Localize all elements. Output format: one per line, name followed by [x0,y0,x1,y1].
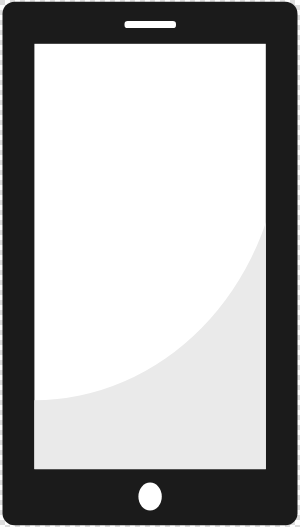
button[interactable]: Phone display [34,44,265,469]
button[interactable]: Home button [138,483,161,511]
